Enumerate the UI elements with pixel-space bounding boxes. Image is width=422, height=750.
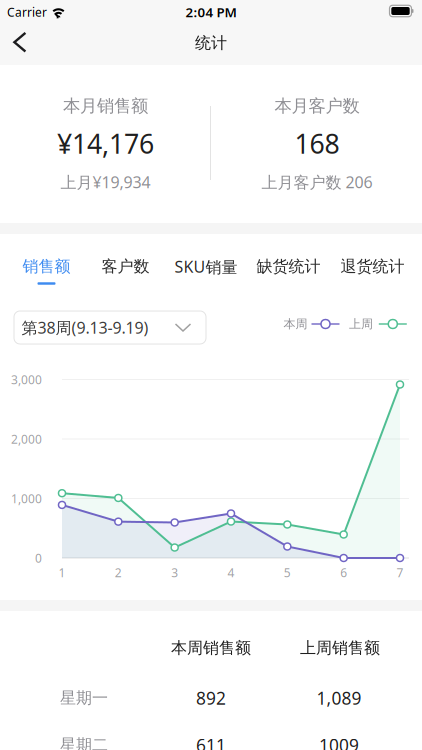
button[interactable]: 退货统计 bbox=[0, 234, 422, 290]
staticText: 6 bbox=[340, 564, 347, 580]
staticText: 本月客户数 bbox=[274, 95, 359, 117]
staticText: 1,089 bbox=[316, 686, 361, 709]
staticText: 5 bbox=[284, 564, 291, 580]
staticText: 上月¥19,934 bbox=[60, 171, 150, 193]
staticText: Carrier bbox=[7, 4, 47, 20]
staticText: 611 bbox=[196, 733, 226, 750]
staticText: 客户数 bbox=[101, 257, 149, 276]
button[interactable]: 缺货统计 bbox=[0, 234, 422, 290]
staticText: 168 bbox=[294, 126, 339, 161]
staticText: 本月销售额 bbox=[63, 95, 148, 117]
staticText: 本周销售额 bbox=[171, 638, 251, 658]
staticText: 0 bbox=[35, 550, 42, 566]
button[interactable]: 客户数 bbox=[0, 234, 422, 290]
staticText: 2 bbox=[115, 564, 122, 580]
staticText: 上周 bbox=[349, 317, 373, 331]
staticText: 2,000 bbox=[11, 431, 42, 447]
button[interactable]: Back bbox=[0, 26, 44, 65]
staticText: 统计 bbox=[195, 33, 227, 53]
staticText: 2:04 PM bbox=[185, 3, 236, 21]
staticText: 本周 bbox=[283, 317, 307, 331]
staticText: 星期一 bbox=[60, 688, 108, 708]
staticText: 1,000 bbox=[11, 490, 42, 506]
staticText: 7 bbox=[396, 564, 403, 580]
staticText: 第38周(9.13-9.19) bbox=[21, 317, 148, 338]
staticText: 1009 bbox=[319, 733, 359, 750]
staticText: 上月客户数 206 bbox=[261, 171, 372, 193]
button[interactable]: 销售额 bbox=[0, 234, 422, 290]
staticText: 892 bbox=[196, 686, 226, 709]
staticText: 退货统计 bbox=[340, 257, 404, 276]
staticText: 1 bbox=[58, 564, 65, 580]
staticText: 星期二 bbox=[60, 735, 108, 750]
staticText: ¥14,176 bbox=[57, 126, 154, 161]
button[interactable]: 第38周(9.13-9.19) bbox=[14, 311, 206, 344]
staticText: 销售额 bbox=[22, 257, 70, 276]
staticText: SKU销量 bbox=[174, 256, 237, 277]
button[interactable]: SKU销量 bbox=[0, 234, 422, 290]
staticText: 上周销售额 bbox=[300, 638, 380, 658]
staticText: 3,000 bbox=[11, 371, 42, 387]
staticText: 3 bbox=[171, 564, 178, 580]
staticText: 4 bbox=[227, 564, 234, 580]
staticText: 缺货统计 bbox=[256, 257, 320, 276]
